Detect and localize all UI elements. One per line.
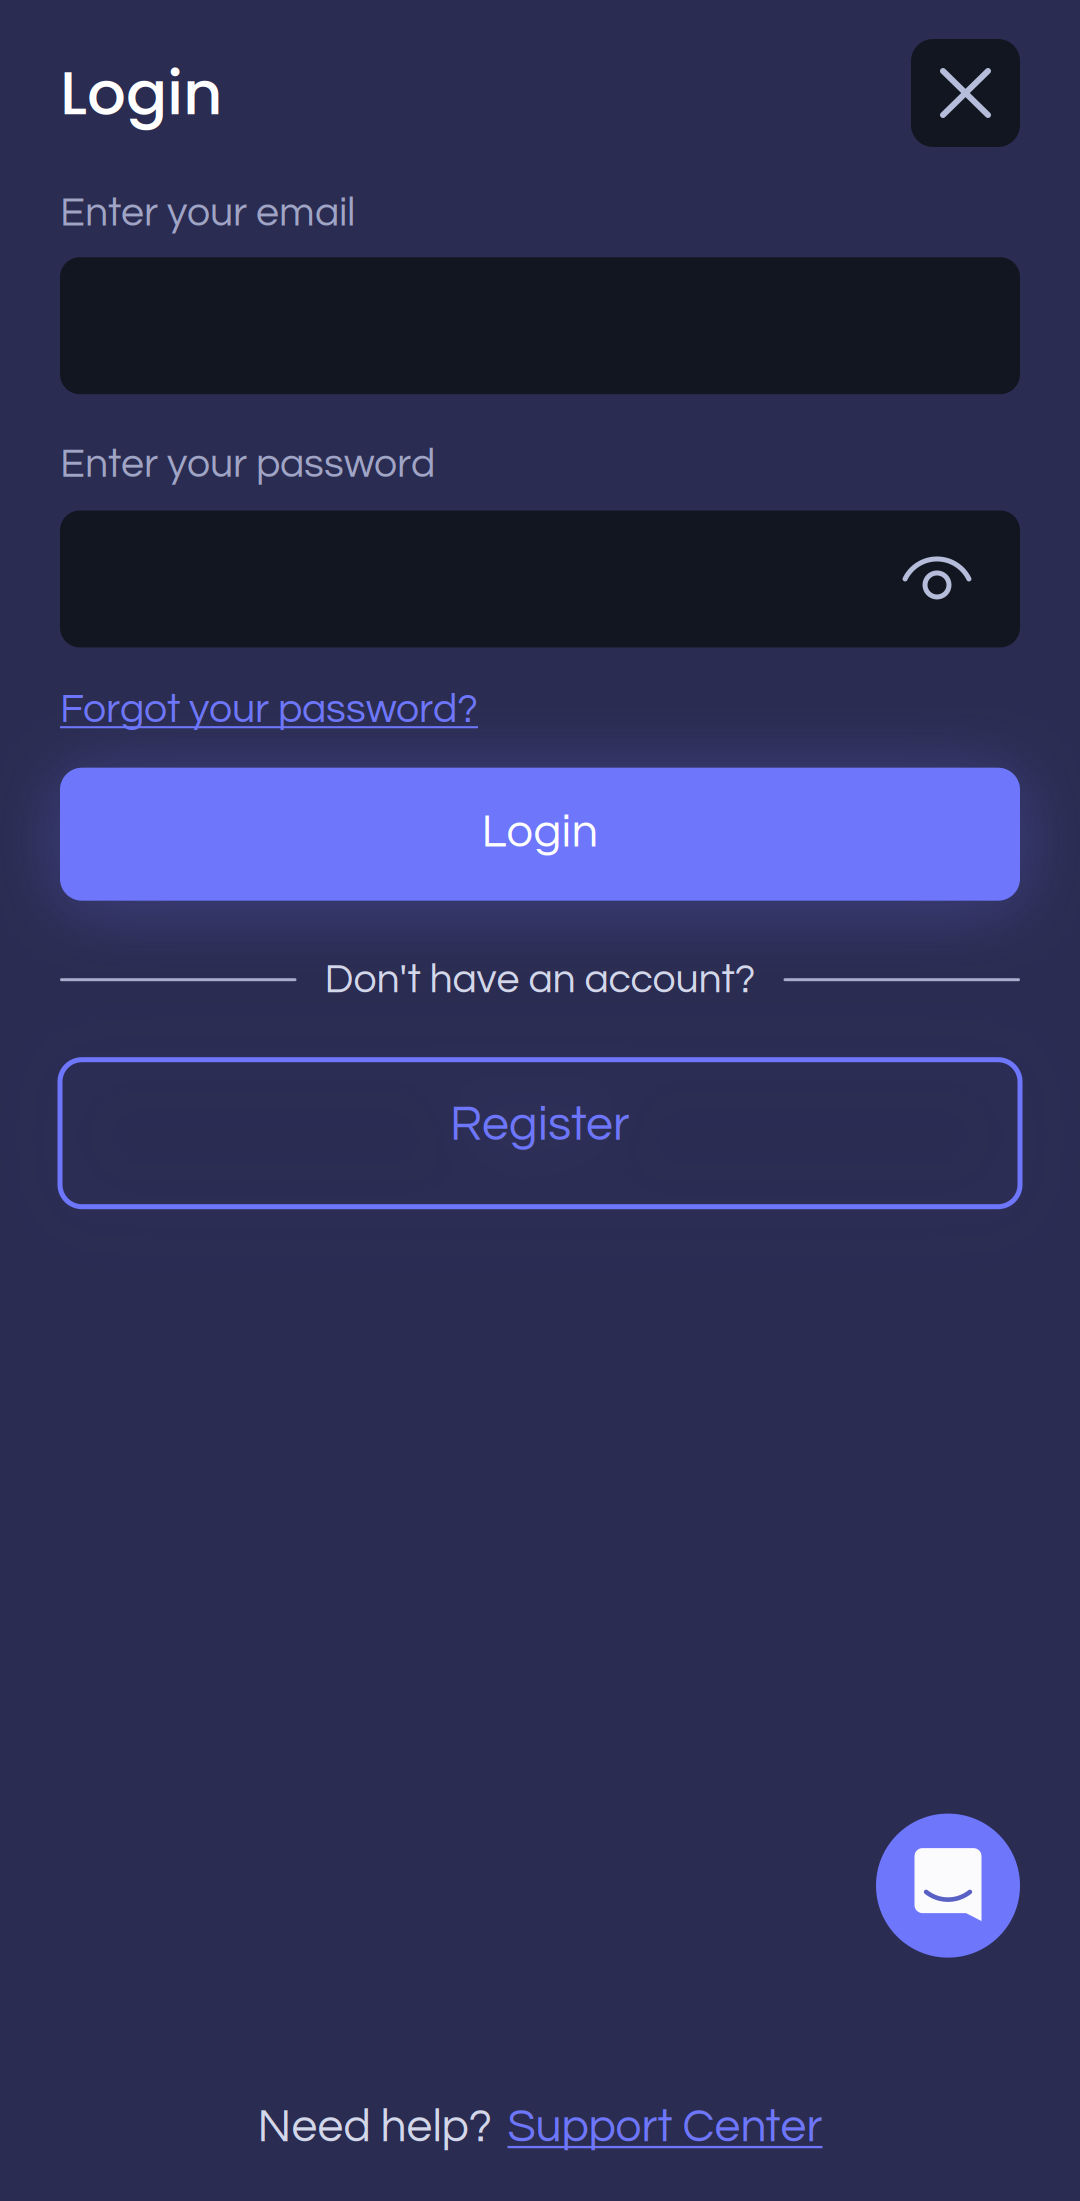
staticText: Enter your password	[60, 443, 435, 485]
button[interactable]: Close	[911, 39, 1020, 147]
staticText: Support Center	[507, 2104, 822, 2151]
button[interactable]: Login	[0, 768, 1080, 901]
staticText: Need help?	[257, 2104, 491, 2151]
staticText: Enter your email	[60, 192, 355, 234]
staticText: Forgot your password?	[60, 688, 478, 731]
staticText: Register	[450, 1100, 630, 1150]
button[interactable]: Support Center	[507, 2104, 822, 2151]
staticText: Login	[481, 808, 598, 856]
button[interactable]: Show password	[899, 556, 1020, 602]
staticText: Login	[60, 50, 223, 136]
button[interactable]: Forgot your password?	[0, 688, 1080, 731]
staticText: Don't have an account?	[324, 959, 755, 1001]
button[interactable]: Open chat	[876, 1814, 1020, 1958]
button[interactable]: Register	[0, 1060, 1080, 1207]
